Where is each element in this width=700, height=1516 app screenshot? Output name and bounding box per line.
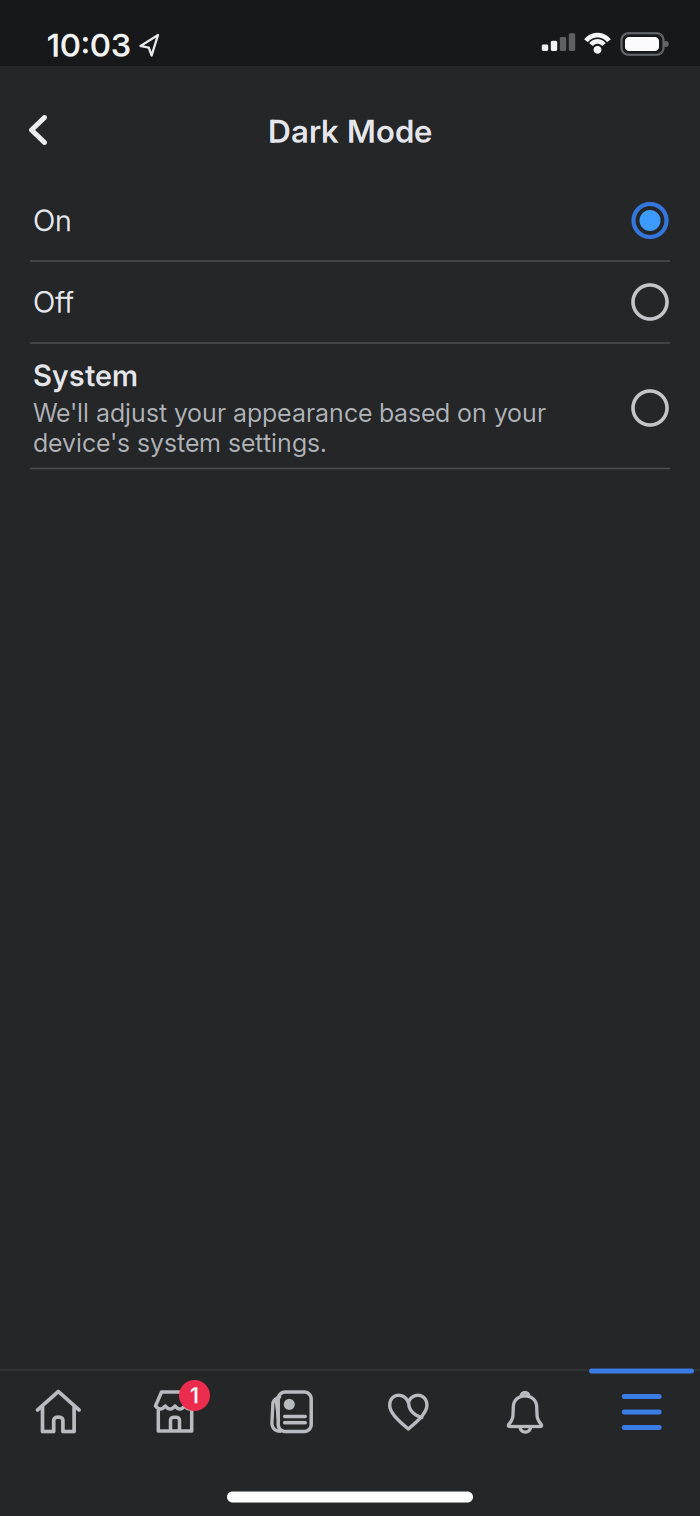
button[interactable] bbox=[3, 98, 73, 162]
button[interactable] bbox=[234, 1370, 350, 1516]
staticText: We'll adjust your appearance based on yo… bbox=[33, 398, 546, 458]
button[interactable]: On bbox=[0, 180, 700, 261]
button[interactable]: Off bbox=[0, 261, 700, 342]
button[interactable]: 1 bbox=[117, 1370, 233, 1516]
staticText: Dark Mode bbox=[268, 112, 432, 150]
button[interactable]: System bbox=[0, 345, 700, 471]
button[interactable] bbox=[0, 1370, 116, 1516]
button[interactable] bbox=[350, 1370, 466, 1516]
staticText: On bbox=[33, 203, 72, 238]
button[interactable] bbox=[467, 1370, 583, 1516]
staticText: System bbox=[33, 358, 138, 393]
staticText: Off bbox=[33, 285, 74, 319]
button[interactable] bbox=[584, 1370, 700, 1516]
staticText: 1 bbox=[190, 1383, 199, 1408]
staticText: 10:03 bbox=[47, 26, 131, 64]
